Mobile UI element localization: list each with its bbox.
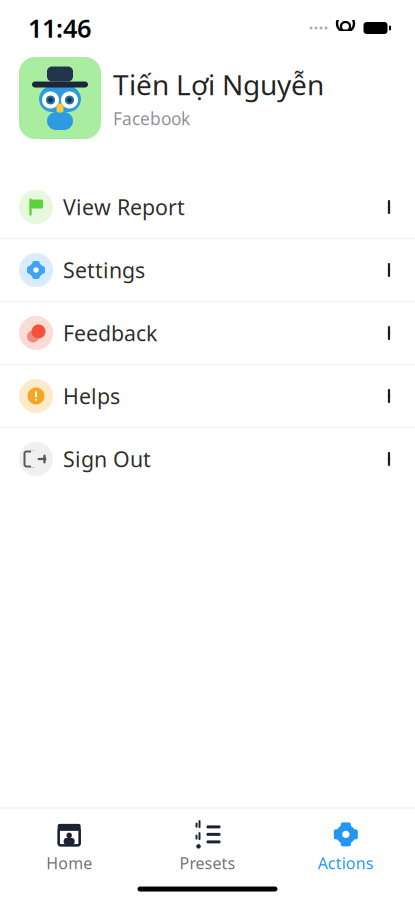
staticText: Sign Out bbox=[63, 445, 151, 473]
button[interactable]: Home bbox=[0, 820, 138, 874]
button[interactable]: Presets bbox=[138, 820, 277, 874]
button[interactable]: Helps bbox=[0, 365, 415, 427]
button[interactable]: Sign Out bbox=[0, 428, 415, 490]
staticText: Helps bbox=[63, 382, 120, 410]
staticText: Tiến Lợi Nguyễn bbox=[113, 66, 324, 103]
button[interactable]: Settings bbox=[0, 239, 415, 301]
staticText: View Report bbox=[63, 193, 185, 221]
staticText: Home bbox=[46, 852, 92, 874]
staticText: Facebook bbox=[113, 107, 190, 130]
staticText: Presets bbox=[179, 852, 235, 874]
staticText: 11:46 bbox=[28, 11, 91, 45]
staticText: Feedback bbox=[63, 319, 157, 347]
staticText: Actions bbox=[318, 852, 374, 874]
button[interactable]: View Report bbox=[0, 176, 415, 238]
staticText: Settings bbox=[63, 256, 145, 284]
button[interactable]: Actions bbox=[277, 820, 415, 874]
button[interactable]: Feedback bbox=[0, 302, 415, 364]
